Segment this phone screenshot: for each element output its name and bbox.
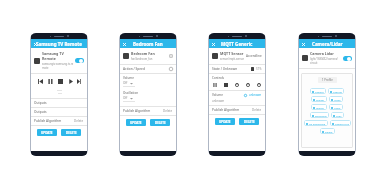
button[interactable]: Pause [212,82,218,88]
button[interactable]: Stop [223,82,229,88]
button[interactable]: Next [77,78,81,85]
staticText: Oscillation [123,91,139,95]
staticText: Samsung TV Remote [42,51,75,61]
staticText: DELETE [155,121,166,125]
staticText: Camera Link [335,122,349,125]
staticText: Bedroom Fan [133,41,163,47]
button[interactable]: Go Dashboard [304,120,328,126]
staticText: Delete [325,130,333,133]
staticText: Publish Algorithm [123,109,151,113]
button[interactable]: Close [299,39,355,48]
button[interactable]: Power [245,82,251,88]
staticText: Camera/Lidar [312,41,343,47]
button[interactable]: Bedroom Fan [123,51,173,61]
staticText: Samsung TV Remote [36,41,82,47]
staticText: Volume [123,76,134,80]
button[interactable]: Toggle [343,56,352,61]
button[interactable]: Close [209,39,265,48]
button[interactable]: Clips [331,112,344,118]
button[interactable]: MQTT Sensor [212,51,262,61]
staticText: Outputs [34,110,47,114]
staticText: MQTT Sensor [220,51,244,56]
staticText: sensor/mqtt-sensor [220,57,245,61]
staticText: UPDATE [219,120,231,124]
button[interactable]: UPDATE [37,129,57,136]
button[interactable]: Close [211,42,215,46]
button[interactable]: Close [122,42,126,46]
staticText: samsungtv.samsung.tv.remote [42,62,75,70]
button[interactable]: Motion [311,104,327,110]
button[interactable]: Capture [328,88,344,94]
staticText: Off [123,96,128,100]
button[interactable]: Previous [37,78,44,85]
staticText: unknown [249,93,262,97]
staticText: MQTT Generic [221,41,253,47]
button[interactable]: Stop [57,78,64,85]
button[interactable]: Toggle [75,58,84,63]
button[interactable]: Close [120,39,176,48]
staticText: Capture [333,90,342,93]
staticText: Motion [316,106,325,109]
staticText: Audio [334,98,341,101]
staticText: Accendline [246,54,262,58]
button[interactable]: Pause [47,78,54,85]
staticText: Stream [316,98,325,101]
button[interactable]: Speed [234,82,240,88]
staticText: Outputs [34,101,47,105]
button[interactable]: Night [329,104,343,110]
staticText: DELETE [66,131,77,135]
staticText: Volume [212,93,223,97]
button[interactable]: Stream [311,96,327,102]
button[interactable]: Close [33,42,37,46]
button[interactable]: Samsung TV Remote [34,51,84,70]
button[interactable]: Camera [310,88,326,94]
button[interactable]: DELETE [61,129,81,136]
staticText: UPDATE [41,131,53,135]
button[interactable]: Recording [310,112,329,118]
staticText: Camera [315,90,324,93]
button[interactable]: Edit [169,54,173,58]
staticText: fan/bedroom_fan [131,57,153,61]
staticText: Publish Algorithm [212,108,240,112]
button[interactable]: Off [123,96,133,100]
button[interactable]: UPDATE [215,118,235,125]
staticText: Delete [252,108,262,112]
staticText: Delete [74,119,84,123]
button[interactable]: UPDATE [126,119,146,126]
button[interactable]: Home [256,82,262,88]
staticText: State / Unknown [212,67,238,71]
staticText: Bedroom Fan [131,51,155,56]
button[interactable]: Off [123,81,133,85]
staticText: 1 Profile [322,78,333,82]
button[interactable]: Close [301,42,305,46]
staticText: Delete [163,109,173,113]
staticText: UPDATE [130,121,142,125]
button[interactable]: Delete [320,128,335,134]
button[interactable]: Audio [329,96,343,102]
button[interactable]: Camera Link [330,120,351,126]
button[interactable]: Camera Lidar [302,51,352,65]
staticText: Publish Algorithm [34,119,62,123]
button[interactable]: Fan [169,67,173,71]
staticText: 57% [256,67,262,71]
button[interactable]: Close [31,39,87,48]
button[interactable]: DELETE [150,119,170,126]
staticText: Night [334,106,341,109]
staticText: Clips [336,114,342,117]
staticText: Controls [212,76,225,80]
staticText: Off [123,81,128,85]
staticText: DELETE [244,120,255,124]
button[interactable]: Volume [244,94,247,97]
staticText: Camera Lidar [310,51,334,56]
button[interactable]: Play [67,78,74,85]
staticText: unknown [212,99,225,103]
staticText: Recording [315,114,327,117]
staticText: Action / Speed [123,67,145,71]
staticText: Go Dashboard [309,122,326,125]
staticText: light/1680452/camera/circuit [310,57,343,65]
button[interactable]: DELETE [239,118,259,125]
